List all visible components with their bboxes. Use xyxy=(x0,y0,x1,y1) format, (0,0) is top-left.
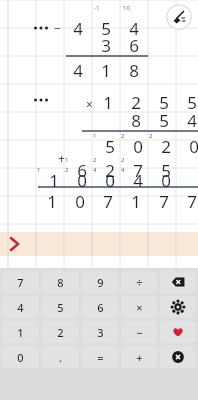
staticText: 0 xyxy=(77,169,87,192)
staticText: 0 xyxy=(189,135,198,158)
staticText: 3 xyxy=(101,34,111,57)
staticText: 9 xyxy=(97,275,104,290)
staticText: 2 xyxy=(65,166,69,174)
staticText: 1 xyxy=(65,156,69,164)
staticText: 7 xyxy=(133,159,143,182)
staticText: 2 xyxy=(121,156,125,164)
staticText: 3 xyxy=(97,325,104,340)
staticText: 1 xyxy=(101,59,111,82)
button[interactable]: = xyxy=(82,346,118,368)
staticText: + xyxy=(58,150,65,166)
staticText: 5 xyxy=(187,91,197,114)
staticText: 5 xyxy=(101,17,111,40)
staticText: 1 xyxy=(37,166,41,174)
staticText: 6 xyxy=(129,34,139,57)
staticText: 2 xyxy=(149,132,153,140)
staticText: 1 xyxy=(131,190,141,213)
button[interactable]: 0 xyxy=(2,346,39,368)
button[interactable]: Settings xyxy=(160,296,196,318)
staticText: -1 xyxy=(94,4,100,12)
staticText: − xyxy=(136,325,143,340)
staticText: 7 xyxy=(187,190,197,213)
staticText: 1 xyxy=(47,190,57,213)
staticText: × xyxy=(136,300,143,315)
button[interactable]: ÷ xyxy=(121,271,157,293)
staticText: . xyxy=(59,350,62,365)
staticText: 6 xyxy=(77,159,87,182)
staticText: 0 xyxy=(105,169,115,192)
staticText: 1 xyxy=(93,132,97,140)
button[interactable]: . xyxy=(42,346,79,368)
button[interactable]: Favorite xyxy=(160,321,196,343)
staticText: = xyxy=(97,350,104,365)
staticText: 5 xyxy=(159,91,169,114)
staticText: + xyxy=(136,350,143,365)
staticText: 1 xyxy=(49,169,59,192)
button[interactable]: 6 xyxy=(82,296,118,318)
staticText: 5 xyxy=(105,135,115,158)
staticText: 0 xyxy=(133,135,143,158)
staticText: 5 xyxy=(161,159,171,182)
button[interactable]: 3 xyxy=(82,321,118,343)
staticText: 2 xyxy=(121,132,125,140)
staticText: 7 xyxy=(159,190,169,213)
button[interactable]: 4 xyxy=(2,296,39,318)
staticText: 4 xyxy=(133,169,143,192)
staticText: 5 xyxy=(57,300,64,315)
button[interactable]: Clear worksheet xyxy=(166,4,192,30)
staticText: 5 xyxy=(159,109,169,132)
button[interactable]: 7 xyxy=(2,271,39,293)
button[interactable]: − xyxy=(121,321,157,343)
staticText: 2 xyxy=(57,325,64,340)
staticText: 4 xyxy=(73,17,83,40)
button[interactable]: More options xyxy=(30,20,52,36)
staticText: 4 xyxy=(17,300,24,315)
button[interactable]: Backspace xyxy=(160,271,196,293)
button[interactable]: 9 xyxy=(82,271,118,293)
staticText: 2 xyxy=(161,135,171,158)
button[interactable]: 2 xyxy=(42,321,79,343)
staticText: 7 xyxy=(17,275,24,290)
staticText: 0 xyxy=(75,190,85,213)
button[interactable]: More options xyxy=(30,92,52,108)
staticText: 10 xyxy=(123,4,130,12)
staticText: 8 xyxy=(129,59,139,82)
button[interactable]: Close xyxy=(160,346,196,368)
staticText: 4 xyxy=(121,166,125,174)
staticText: 8 xyxy=(57,275,64,290)
staticText: 2 xyxy=(131,91,141,114)
button[interactable]: 8 xyxy=(42,271,79,293)
staticText: 4 xyxy=(129,17,139,40)
staticText: ÷ xyxy=(136,275,143,290)
staticText: 1 xyxy=(17,325,24,340)
staticText: 2 xyxy=(93,156,97,164)
staticText: 4 xyxy=(187,109,197,132)
staticText: 0 xyxy=(17,350,24,365)
button[interactable]: 1 xyxy=(2,321,39,343)
button[interactable]: × xyxy=(121,296,157,318)
staticText: 6 xyxy=(97,300,104,315)
staticText: 0 xyxy=(161,169,171,192)
staticText: 4 xyxy=(73,59,83,82)
staticText: 1 xyxy=(103,91,113,114)
staticText: × xyxy=(86,96,93,112)
button[interactable]: 5 xyxy=(42,296,79,318)
button[interactable]: + xyxy=(121,346,157,368)
staticText: − xyxy=(54,20,61,36)
staticText: 8 xyxy=(131,109,141,132)
staticText: 7 xyxy=(103,190,113,213)
staticText: 2 xyxy=(105,159,115,182)
staticText: 4 xyxy=(93,166,97,174)
